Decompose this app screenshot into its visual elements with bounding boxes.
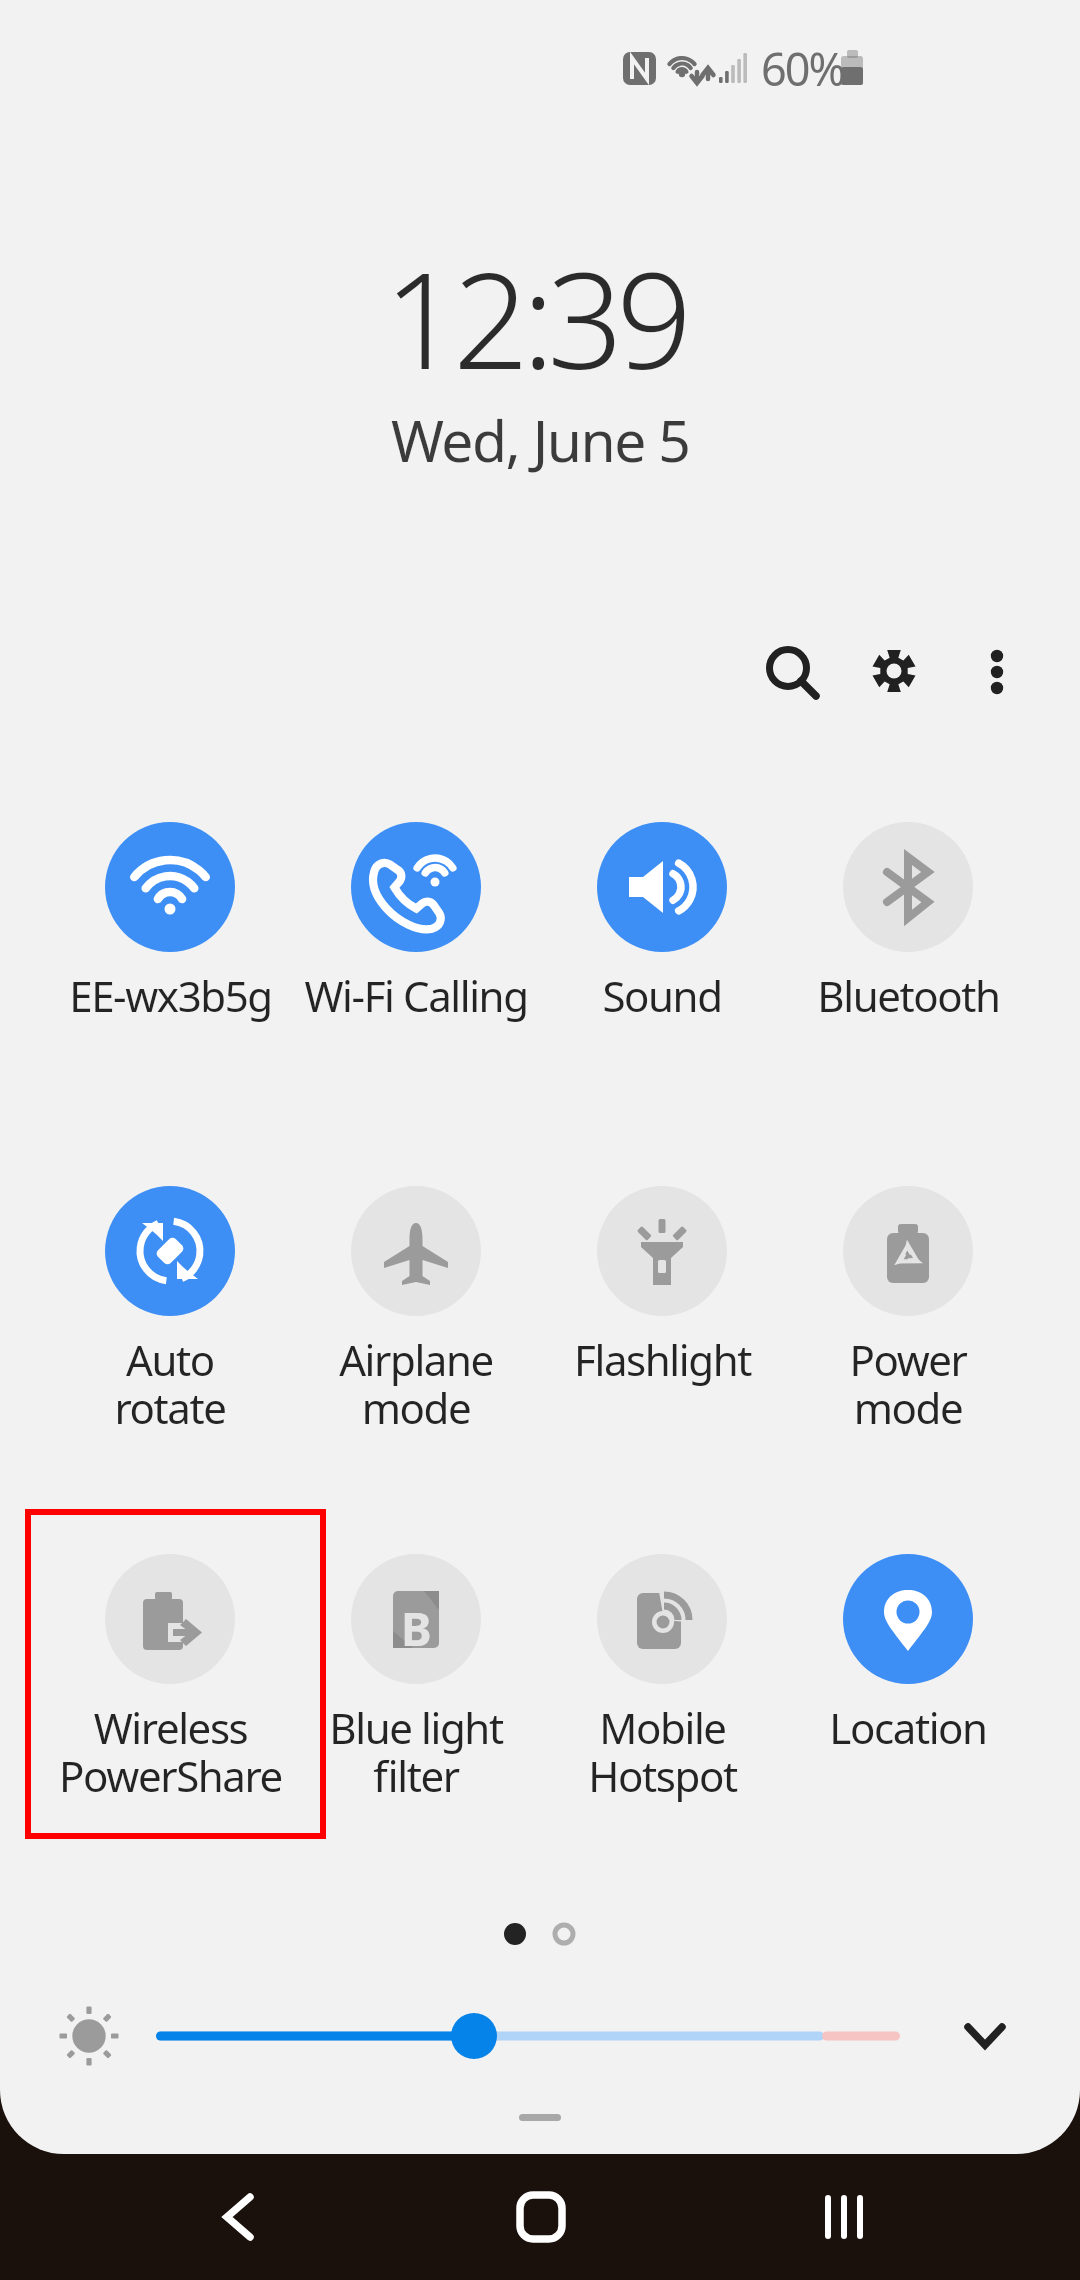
button[interactable]: Back (163, 2154, 313, 2280)
staticText: 60% (761, 38, 844, 99)
staticText: Sound (602, 967, 722, 1024)
staticText: Wi-Fi Calling (304, 967, 528, 1024)
staticText: Blue light filter (329, 1699, 503, 1804)
staticText: Wed, June 5 (391, 401, 690, 479)
staticText: Mobile Hotspot (588, 1699, 737, 1804)
staticText: B (401, 1597, 432, 1660)
staticText: Location (829, 1699, 987, 1756)
staticText: Wireless PowerShare (59, 1699, 282, 1804)
button[interactable]: More options (957, 632, 1037, 712)
staticText: EE-wx3b5g (69, 967, 272, 1024)
button[interactable]: Mobile Hotspot (539, 1519, 785, 1839)
button[interactable]: Home (466, 2154, 616, 2280)
button[interactable]: Settings (854, 631, 934, 711)
staticText: Airplane mode (339, 1331, 493, 1436)
button[interactable]: Bluetooth (785, 787, 1031, 1107)
button[interactable]: Wi-Fi Calling (293, 787, 539, 1107)
staticText: 12:39 (384, 227, 686, 408)
button[interactable]: Recent apps (769, 2154, 919, 2280)
staticText: Flashlight (574, 1331, 751, 1388)
button[interactable]: Location (785, 1519, 1031, 1839)
button[interactable]: Search (748, 628, 828, 708)
button[interactable]: Wireless PowerShare (47, 1519, 293, 1839)
button[interactable]: Sound (539, 787, 785, 1107)
button[interactable]: Airplane mode (293, 1151, 539, 1471)
button[interactable]: EE-wx3b5g (47, 787, 293, 1107)
staticText: Bluetooth (817, 967, 1000, 1024)
button[interactable]: Expand brightness settings (940, 1990, 1032, 2082)
button[interactable]: Power mode (785, 1151, 1031, 1471)
button[interactable]: B (293, 1519, 539, 1839)
button[interactable]: Flashlight (539, 1151, 785, 1471)
staticText: Auto rotate (114, 1331, 226, 1436)
staticText: Power mode (849, 1331, 967, 1436)
button[interactable]: Auto rotate (47, 1151, 293, 1471)
